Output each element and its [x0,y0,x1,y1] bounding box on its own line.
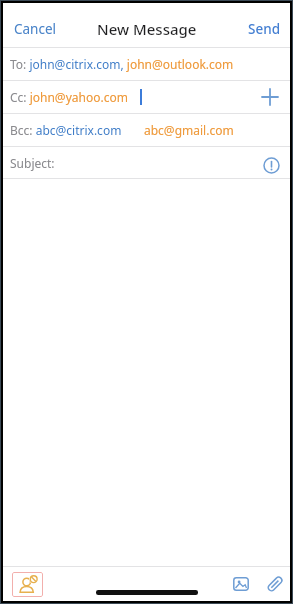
staticText: abc@gmail.com [144,122,234,138]
button[interactable]: Bcc: abc@citrix.com [10,114,290,146]
button[interactable] [266,575,283,594]
staticText: Cc: john@yahoo.com [10,89,132,105]
button[interactable] [263,157,280,174]
button[interactable]: Cancel [14,20,57,38]
button[interactable]: Send [248,20,281,38]
staticText: Subject: [10,155,55,171]
staticText: To: john@citrix.com, john@outlook.com [10,56,234,72]
button[interactable]: To: john@citrix.com, john@outlook.com [10,48,290,80]
button[interactable] [261,88,279,106]
staticText: New Message [97,19,197,39]
button[interactable] [12,572,43,597]
button[interactable]: Cc: john@yahoo.com [10,81,290,113]
button[interactable] [233,577,249,591]
staticText: Bcc: abc@citrix.com [10,122,122,138]
button[interactable]: Subject: [10,147,280,178]
